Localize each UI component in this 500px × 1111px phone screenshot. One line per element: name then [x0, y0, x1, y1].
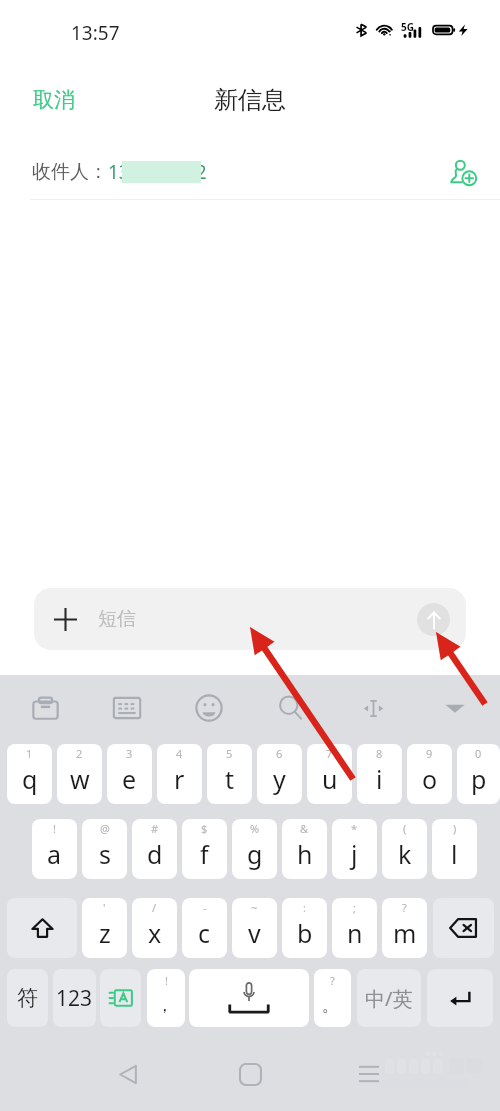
staticText: u: [322, 762, 338, 796]
staticText: o: [422, 762, 438, 796]
button[interactable]: Keyboard: [105, 686, 149, 730]
button[interactable]: !: [32, 819, 77, 879]
staticText: h: [297, 837, 313, 871]
button[interactable]: Home: [226, 1050, 274, 1098]
button[interactable]: 2: [57, 744, 102, 804]
staticText: v: [248, 916, 261, 950]
staticText: @: [100, 821, 110, 836]
staticText: -: [203, 900, 207, 915]
button[interactable]: !: [147, 969, 185, 1027]
staticText: a: [47, 837, 62, 871]
staticText: n: [347, 916, 363, 950]
staticText: 8: [376, 746, 383, 761]
staticText: r: [174, 762, 185, 796]
staticText: x: [148, 916, 162, 950]
button[interactable]: &: [282, 819, 327, 879]
button[interactable]: ~: [232, 898, 277, 958]
button[interactable]: Clipboard: [23, 686, 67, 730]
button[interactable]: *: [332, 819, 377, 879]
button[interactable]: $: [182, 819, 227, 879]
button[interactable]: Emoji: [187, 686, 231, 730]
button[interactable]: Backspace: [433, 898, 494, 958]
button[interactable]: 9: [407, 744, 452, 804]
staticText: :: [303, 900, 306, 915]
staticText: 2: [76, 746, 83, 761]
staticText: 123: [56, 984, 93, 1013]
button[interactable]: Hide keyboard: [433, 686, 477, 730]
button[interactable]: Input language: [100, 969, 141, 1027]
button[interactable]: ?: [314, 969, 351, 1027]
staticText: e: [122, 762, 137, 796]
staticText: 6: [276, 746, 283, 761]
staticText: 5G: [401, 20, 414, 34]
staticText: m: [393, 916, 417, 950]
button[interactable]: (: [382, 819, 427, 879]
staticText: 新信息: [214, 85, 286, 115]
button[interactable]: Add attachment: [43, 597, 87, 641]
staticText: !: [165, 973, 168, 988]
staticText: ;: [353, 900, 356, 915]
button[interactable]: 符: [7, 969, 48, 1027]
button[interactable]: 3: [107, 744, 152, 804]
staticText: 5: [226, 746, 233, 761]
staticText: 9: [426, 746, 433, 761]
button[interactable]: -: [182, 898, 227, 958]
staticText: 。: [322, 995, 339, 1016]
button[interactable]: Shift: [7, 898, 77, 958]
staticText: t: [225, 762, 235, 796]
staticText: 符: [17, 985, 38, 1011]
staticText: j: [351, 837, 358, 871]
staticText: 3: [126, 746, 133, 761]
button[interactable]: Enter: [427, 969, 493, 1027]
button[interactable]: /: [132, 898, 177, 958]
staticText: ?: [330, 973, 335, 988]
button[interactable]: Move cursor: [351, 686, 395, 730]
button[interactable]: Back: [104, 1050, 152, 1098]
button[interactable]: Space: [189, 969, 309, 1027]
staticText: (: [403, 821, 407, 836]
button[interactable]: :: [282, 898, 327, 958]
button[interactable]: ;: [332, 898, 377, 958]
button[interactable]: 123: [53, 969, 96, 1027]
staticText: 短信: [98, 607, 417, 631]
button[interactable]: 8: [357, 744, 402, 804]
button[interactable]: 5: [207, 744, 252, 804]
staticText: /: [152, 900, 157, 915]
button[interactable]: 1: [7, 744, 52, 804]
button[interactable]: %: [232, 819, 277, 879]
staticText: w: [70, 762, 90, 796]
staticText: d: [147, 837, 163, 871]
button[interactable]: 7: [307, 744, 352, 804]
staticText: q: [22, 762, 38, 796]
button[interactable]: ): [432, 819, 477, 879]
staticText: 13: [108, 159, 130, 185]
staticText: $: [201, 821, 208, 836]
button[interactable]: 取消: [0, 79, 97, 121]
staticText: ~: [251, 900, 258, 915]
staticText: 092: [174, 159, 207, 185]
staticText: f: [200, 837, 209, 871]
button[interactable]: #: [132, 819, 177, 879]
button[interactable]: 6: [257, 744, 302, 804]
button[interactable]: @: [82, 819, 127, 879]
staticText: *: [351, 821, 358, 836]
staticText: ): [453, 821, 457, 836]
staticText: 8888: [130, 159, 174, 185]
button[interactable]: 4: [157, 744, 202, 804]
staticText: l: [451, 837, 458, 871]
staticText: ': [103, 900, 106, 915]
staticText: k: [398, 837, 412, 871]
button[interactable]: ?: [382, 898, 427, 958]
staticText: ?: [402, 900, 407, 915]
button[interactable]: Send: [417, 603, 450, 636]
button[interactable]: Recents: [345, 1050, 393, 1098]
button[interactable]: 中/英: [357, 969, 421, 1027]
staticText: %: [250, 821, 260, 836]
button[interactable]: Add contact: [443, 152, 483, 192]
button[interactable]: 0: [457, 744, 500, 804]
staticText: 7: [326, 746, 333, 761]
staticText: ，: [156, 995, 173, 1016]
button[interactable]: ': [82, 898, 127, 958]
staticText: !: [53, 821, 56, 836]
button[interactable]: Search: [269, 686, 313, 730]
